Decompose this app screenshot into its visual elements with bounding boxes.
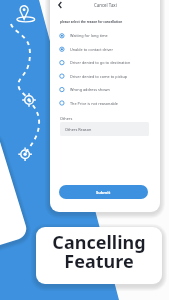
staticText: please select the reason for cancellatio… xyxy=(60,20,123,24)
button[interactable]: Back xyxy=(53,0,67,12)
button[interactable]: Driver denied to come to pickup xyxy=(58,71,154,82)
staticText: Submit xyxy=(96,190,111,195)
staticText: Wrong address shown xyxy=(70,87,110,92)
staticText: Driver denied to come to pickup xyxy=(70,74,128,79)
button[interactable]: Driver denied to go to destination xyxy=(58,57,154,68)
staticText: The Price is not reasonable xyxy=(70,101,118,106)
staticText: Others xyxy=(60,116,73,121)
button[interactable]: Others Reason xyxy=(60,122,149,136)
button[interactable]: Unable to contact driver xyxy=(58,44,154,55)
staticText: Waiting for long time xyxy=(70,33,108,38)
button[interactable]: Submit xyxy=(59,185,148,199)
staticText: Cancel Taxi xyxy=(94,2,117,8)
button[interactable]: The Price is not reasonable xyxy=(58,98,154,109)
staticText: Others Reason xyxy=(65,127,92,132)
button[interactable]: Wrong address shown xyxy=(58,84,154,95)
staticText: Cancelling Feature xyxy=(52,230,146,273)
button[interactable]: Waiting for long time xyxy=(58,30,154,41)
staticText: Unable to contact driver xyxy=(70,47,114,52)
staticText: Driver denied to go to destination xyxy=(70,60,131,65)
